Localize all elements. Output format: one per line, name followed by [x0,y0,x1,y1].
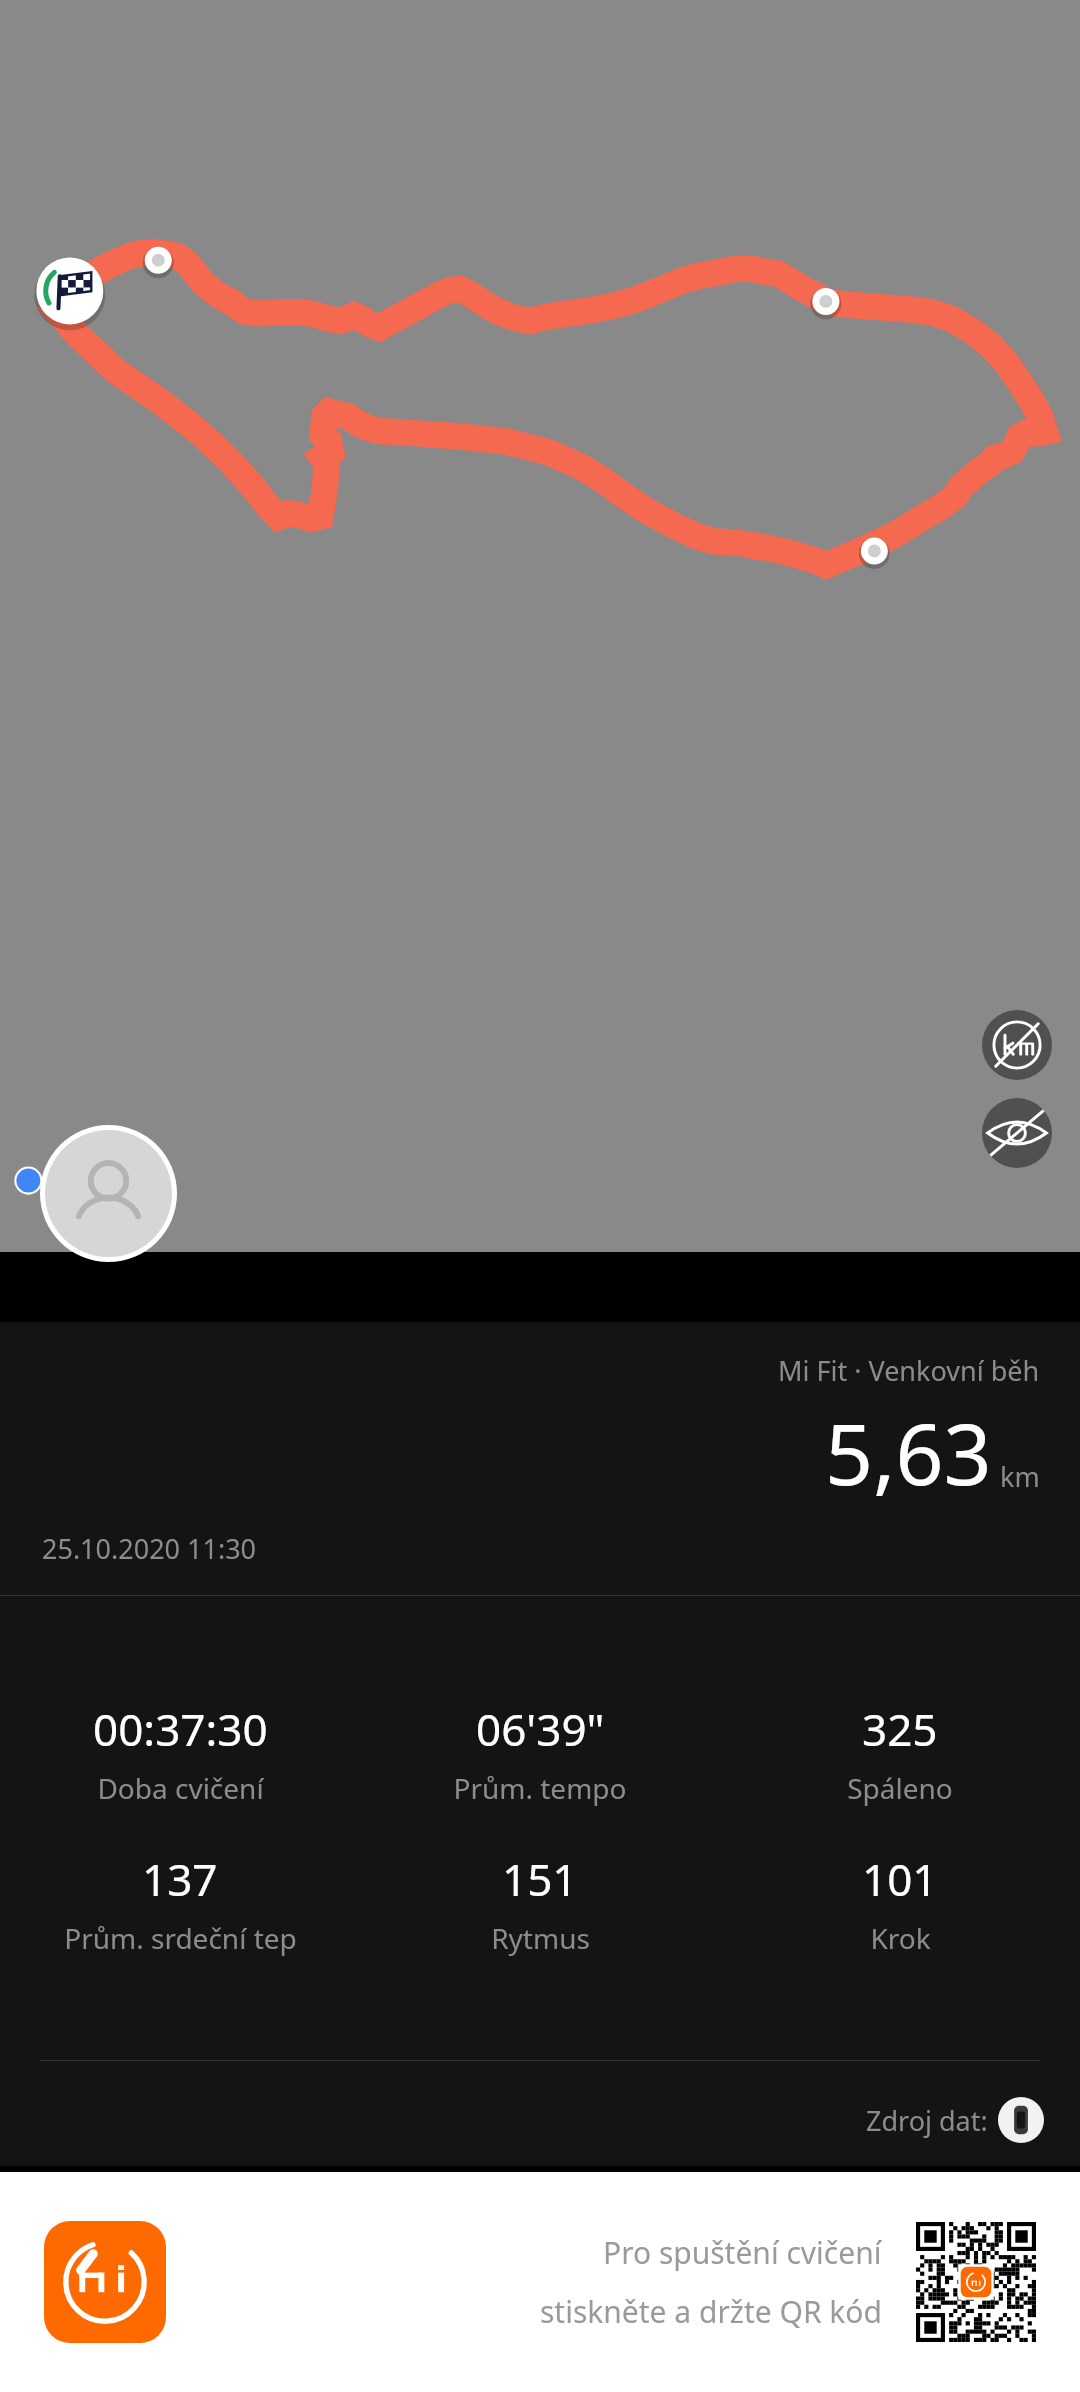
staticText: 5,63 [825,1395,992,1509]
staticText: Krok [870,1919,931,1957]
staticText: 325 [862,1699,938,1759]
staticText: Spáleno [847,1769,953,1807]
staticText: Pro spuštění cvičení [603,2232,882,2273]
button[interactable]: QR code [916,2222,1036,2342]
button[interactable]: 101 [720,1849,1080,1957]
staticText: Prům. tempo [453,1769,627,1807]
button[interactable]: Profile [45,1130,172,1257]
staticText: 25.10.2020 11:30 [42,1530,257,1567]
staticText: 06'39" [476,1699,605,1759]
staticText: Doba cvičení [97,1769,264,1807]
staticText: stiskněte a držte QR kód [540,2291,882,2332]
button[interactable]: Hide kilometre markers [982,1010,1052,1080]
button[interactable]: Mi Fit [44,2221,166,2343]
button[interactable]: 00:37:30 [0,1699,360,1807]
button[interactable]: 137 [0,1849,360,1957]
staticText: 101 [862,1849,938,1909]
staticText: Rytmus [491,1919,590,1957]
button[interactable]: 151 [360,1849,720,1957]
staticText: Prům. srdeční tep [64,1919,297,1957]
staticText: 137 [142,1849,218,1909]
staticText: 151 [502,1849,578,1909]
button[interactable]: 325 [720,1699,1080,1807]
staticText: Mi Fit · Venkovní běh [778,1352,1040,1389]
staticText: 00:37:30 [93,1699,268,1759]
staticText: km [1000,1458,1040,1495]
button[interactable]: Zdroj dat: [866,2097,1044,2143]
staticText: Zdroj dat: [866,2102,988,2139]
button[interactable]: Hide route [982,1098,1052,1168]
button[interactable]: 06'39" [360,1699,720,1807]
